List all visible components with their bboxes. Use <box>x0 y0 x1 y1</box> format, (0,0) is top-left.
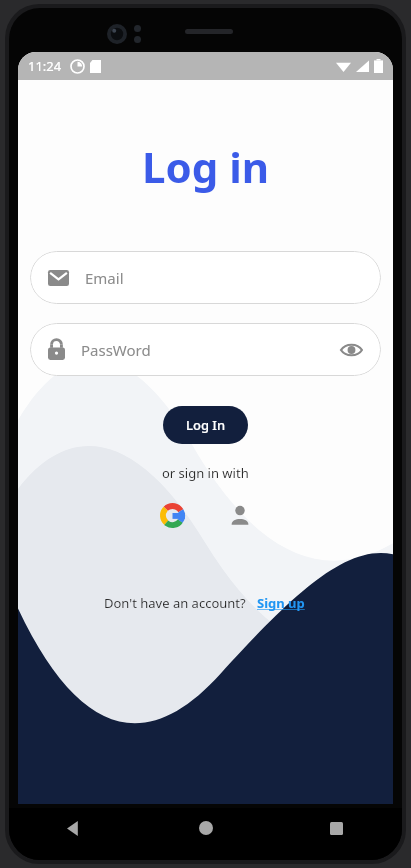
staticText: Log In <box>186 416 226 434</box>
staticText: Log in <box>142 138 270 195</box>
button[interactable]: Back <box>9 808 140 848</box>
button[interactable]: Log In <box>163 406 248 444</box>
staticText: PassWord <box>81 340 339 360</box>
button[interactable]: PassWord <box>30 323 381 376</box>
button[interactable]: Show password <box>339 338 363 362</box>
button[interactable]: Sign up <box>255 592 307 614</box>
staticText: Sign up <box>257 594 305 612</box>
button[interactable]: Recent apps <box>271 808 402 848</box>
staticText: or sign in with <box>162 464 249 482</box>
button[interactable]: Email <box>30 251 381 304</box>
staticText: 11:24 <box>28 57 62 75</box>
staticText: Email <box>85 268 363 288</box>
button[interactable]: Sign in with Google <box>155 498 189 532</box>
staticText: Don't have an account? <box>104 594 246 612</box>
button[interactable]: Sign in with account <box>223 498 257 532</box>
button[interactable]: Home <box>140 808 271 848</box>
